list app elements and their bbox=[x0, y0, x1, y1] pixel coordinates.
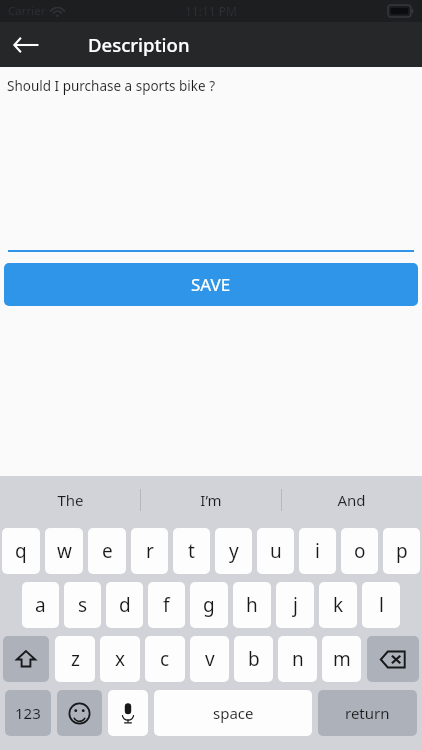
button[interactable]: r bbox=[131, 528, 168, 574]
staticText: I’m bbox=[200, 490, 222, 510]
staticText: a bbox=[35, 592, 46, 618]
staticText: g bbox=[203, 592, 215, 618]
staticText: q bbox=[15, 538, 27, 564]
staticText: u bbox=[270, 538, 282, 564]
staticText: s bbox=[78, 592, 88, 618]
button[interactable]: g bbox=[190, 582, 228, 628]
button[interactable]: Dictation bbox=[108, 690, 148, 736]
staticText: d bbox=[119, 592, 131, 618]
staticText: l bbox=[379, 592, 384, 618]
button[interactable]: t bbox=[173, 528, 210, 574]
button[interactable]: o bbox=[341, 528, 378, 574]
button[interactable]: The bbox=[0, 476, 140, 524]
button[interactable]: And bbox=[281, 476, 422, 524]
staticText: The bbox=[57, 490, 84, 510]
staticText: p bbox=[396, 538, 408, 564]
staticText: Description bbox=[88, 32, 190, 57]
staticText: f bbox=[163, 592, 170, 618]
button[interactable]: I’m bbox=[140, 476, 281, 524]
button[interactable]: k bbox=[319, 582, 357, 628]
staticText: return bbox=[345, 703, 390, 723]
staticText: v bbox=[205, 646, 215, 672]
staticText: SAVE bbox=[191, 273, 231, 296]
button[interactable]: b bbox=[234, 636, 273, 682]
staticText: k bbox=[333, 592, 344, 618]
button[interactable]: i bbox=[299, 528, 336, 574]
staticText: y bbox=[229, 538, 239, 564]
staticText: And bbox=[337, 490, 366, 510]
button[interactable]: m bbox=[322, 636, 361, 682]
button[interactable]: j bbox=[276, 582, 314, 628]
button[interactable]: p bbox=[383, 528, 420, 574]
staticText: b bbox=[248, 646, 260, 672]
button[interactable]: u bbox=[257, 528, 294, 574]
staticText: j bbox=[293, 592, 298, 618]
button[interactable]: v bbox=[190, 636, 229, 682]
button[interactable]: Backspace bbox=[367, 636, 419, 682]
button[interactable]: SAVE bbox=[4, 263, 418, 306]
button[interactable]: Back bbox=[0, 22, 52, 67]
button[interactable]: a bbox=[22, 582, 59, 628]
button[interactable]: l bbox=[362, 582, 400, 628]
button[interactable]: n bbox=[278, 636, 317, 682]
staticText: h bbox=[246, 592, 258, 618]
staticText: m bbox=[333, 646, 351, 672]
button[interactable]: f bbox=[148, 582, 185, 628]
button[interactable]: Emoji bbox=[57, 690, 102, 736]
button[interactable]: h bbox=[233, 582, 271, 628]
staticText: i bbox=[315, 538, 320, 564]
button[interactable]: x bbox=[100, 636, 140, 682]
staticText: c bbox=[160, 646, 170, 672]
staticText: o bbox=[354, 538, 366, 564]
staticText: 123 bbox=[15, 703, 41, 723]
button[interactable]: return bbox=[318, 690, 417, 736]
staticText: Carrier bbox=[8, 3, 46, 19]
button[interactable]: e bbox=[88, 528, 126, 574]
button[interactable]: c bbox=[145, 636, 185, 682]
button[interactable]: q bbox=[2, 528, 40, 574]
button[interactable]: w bbox=[45, 528, 83, 574]
button[interactable]: space bbox=[154, 690, 312, 736]
staticText: x bbox=[115, 646, 126, 672]
staticText: w bbox=[57, 538, 72, 564]
staticText: e bbox=[102, 538, 113, 564]
button[interactable]: z bbox=[55, 636, 95, 682]
staticText: 11:11 PM bbox=[185, 3, 237, 19]
staticText: n bbox=[292, 646, 304, 672]
button[interactable]: s bbox=[64, 582, 101, 628]
button[interactable]: Shift bbox=[3, 636, 49, 682]
button[interactable]: d bbox=[106, 582, 143, 628]
staticText: space bbox=[213, 703, 254, 723]
staticText: z bbox=[71, 646, 80, 672]
staticText: r bbox=[146, 538, 154, 564]
staticText: t bbox=[188, 538, 195, 564]
button[interactable]: 123 bbox=[5, 690, 51, 736]
staticText: Should I purchase a sports bike ? bbox=[7, 77, 216, 95]
button[interactable]: y bbox=[215, 528, 252, 574]
